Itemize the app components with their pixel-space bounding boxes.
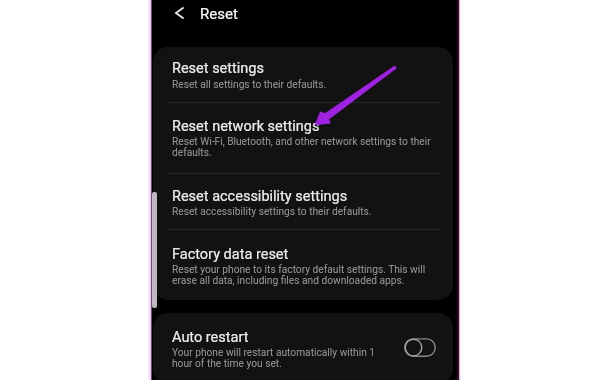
staticText: Reset accessibility settings to their de… (172, 206, 372, 218)
button[interactable]: Auto restart toggle (404, 338, 436, 357)
staticText: Reset accessibility settings (172, 188, 348, 205)
staticText: Reset network settings (172, 118, 320, 135)
staticText: Reset Wi-Fi, Bluetooth, and other networ… (172, 136, 431, 148)
button[interactable]: Back (167, 0, 191, 26)
staticText: Reset (200, 5, 238, 23)
staticText: hour of the time you set. (172, 358, 282, 370)
staticText: Auto restart (172, 329, 249, 346)
button[interactable] (153, 175, 453, 230)
staticText: Your phone will restart automatically wi… (172, 347, 376, 359)
button[interactable] (153, 231, 453, 300)
button[interactable] (153, 47, 453, 103)
button[interactable] (153, 313, 453, 380)
staticText: Factory data reset (172, 246, 289, 263)
button[interactable] (153, 104, 453, 174)
staticText: Reset your phone to its factory default … (172, 264, 426, 276)
staticText: Reset all settings to their defaults. (172, 79, 327, 91)
staticText: defaults. (172, 147, 212, 159)
staticText: erase all data, including files and down… (172, 275, 405, 287)
staticText: Reset settings (172, 60, 264, 77)
